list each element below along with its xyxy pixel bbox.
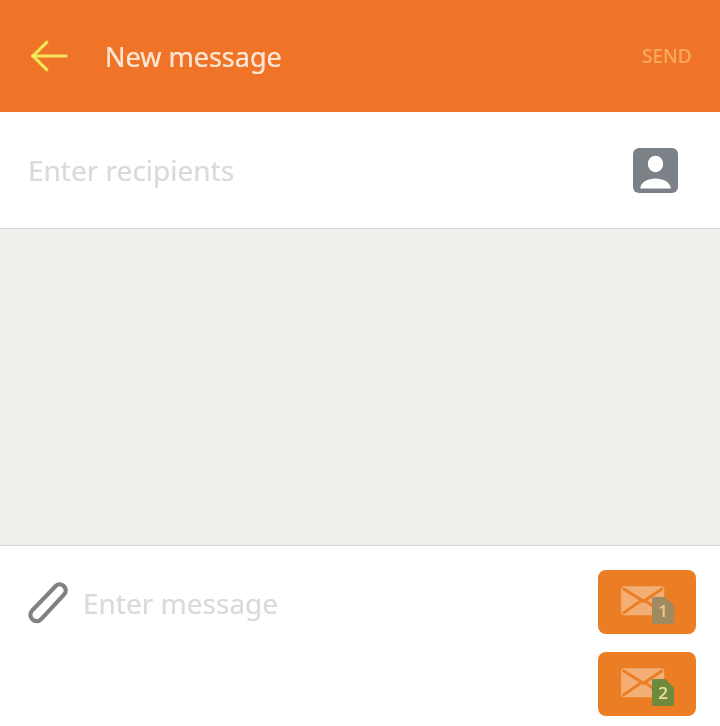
staticText: Enter recipients [28, 151, 633, 189]
staticText: 1 [658, 599, 668, 622]
button[interactable]: Send with SIM 2 [598, 652, 696, 716]
staticText: 2 [658, 681, 668, 704]
button[interactable]: Back [14, 21, 84, 91]
staticText: Enter message [83, 584, 279, 622]
button[interactable]: Enter recipients [0, 112, 720, 228]
button[interactable]: SEND [628, 31, 706, 81]
staticText: New message [105, 38, 282, 75]
staticText: SEND [642, 43, 692, 69]
button[interactable]: Send with SIM 1 [598, 570, 696, 634]
button[interactable]: Attach [10, 568, 78, 636]
button[interactable]: Add contact [633, 148, 678, 193]
